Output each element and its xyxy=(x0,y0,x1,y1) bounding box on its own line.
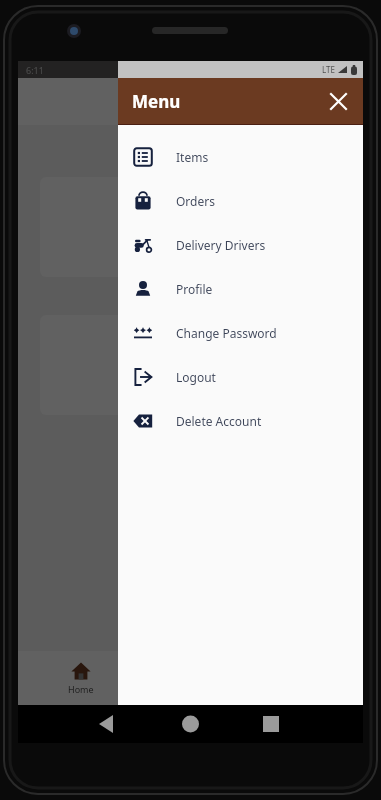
button[interactable]: Close menu xyxy=(323,86,353,116)
button[interactable]: Delete Account xyxy=(118,399,363,443)
staticText: Home xyxy=(68,683,94,695)
staticText: Change Password xyxy=(176,325,277,341)
staticText: Orders xyxy=(176,193,215,209)
button[interactable]: Orders xyxy=(40,177,341,277)
button[interactable]: Home xyxy=(68,661,94,695)
button[interactable]: Change Password xyxy=(118,311,363,355)
staticText: Items xyxy=(176,149,209,165)
staticText: Logout xyxy=(176,369,216,385)
staticText: Orders xyxy=(167,361,215,380)
button[interactable]: Profile xyxy=(118,267,363,311)
button[interactable]: Items xyxy=(118,135,363,179)
staticText: LTE xyxy=(322,64,335,75)
staticText: Delete Account xyxy=(176,413,262,429)
staticText: LTE xyxy=(322,64,335,75)
staticText: 3 xyxy=(187,244,196,263)
staticText: Menu xyxy=(132,90,181,113)
staticText: foods xyxy=(176,89,229,115)
staticText: Profile xyxy=(176,281,213,297)
button[interactable]: Delivery Drivers xyxy=(118,223,363,267)
button[interactable]: Orders xyxy=(40,315,341,415)
staticText: Orders xyxy=(167,223,215,242)
staticText: 6:11 xyxy=(26,64,44,76)
staticText: 6 xyxy=(187,382,196,401)
staticText: Delivery Drivers xyxy=(176,237,266,253)
button[interactable]: Orders xyxy=(118,179,363,223)
button[interactable]: Logout xyxy=(118,355,363,399)
